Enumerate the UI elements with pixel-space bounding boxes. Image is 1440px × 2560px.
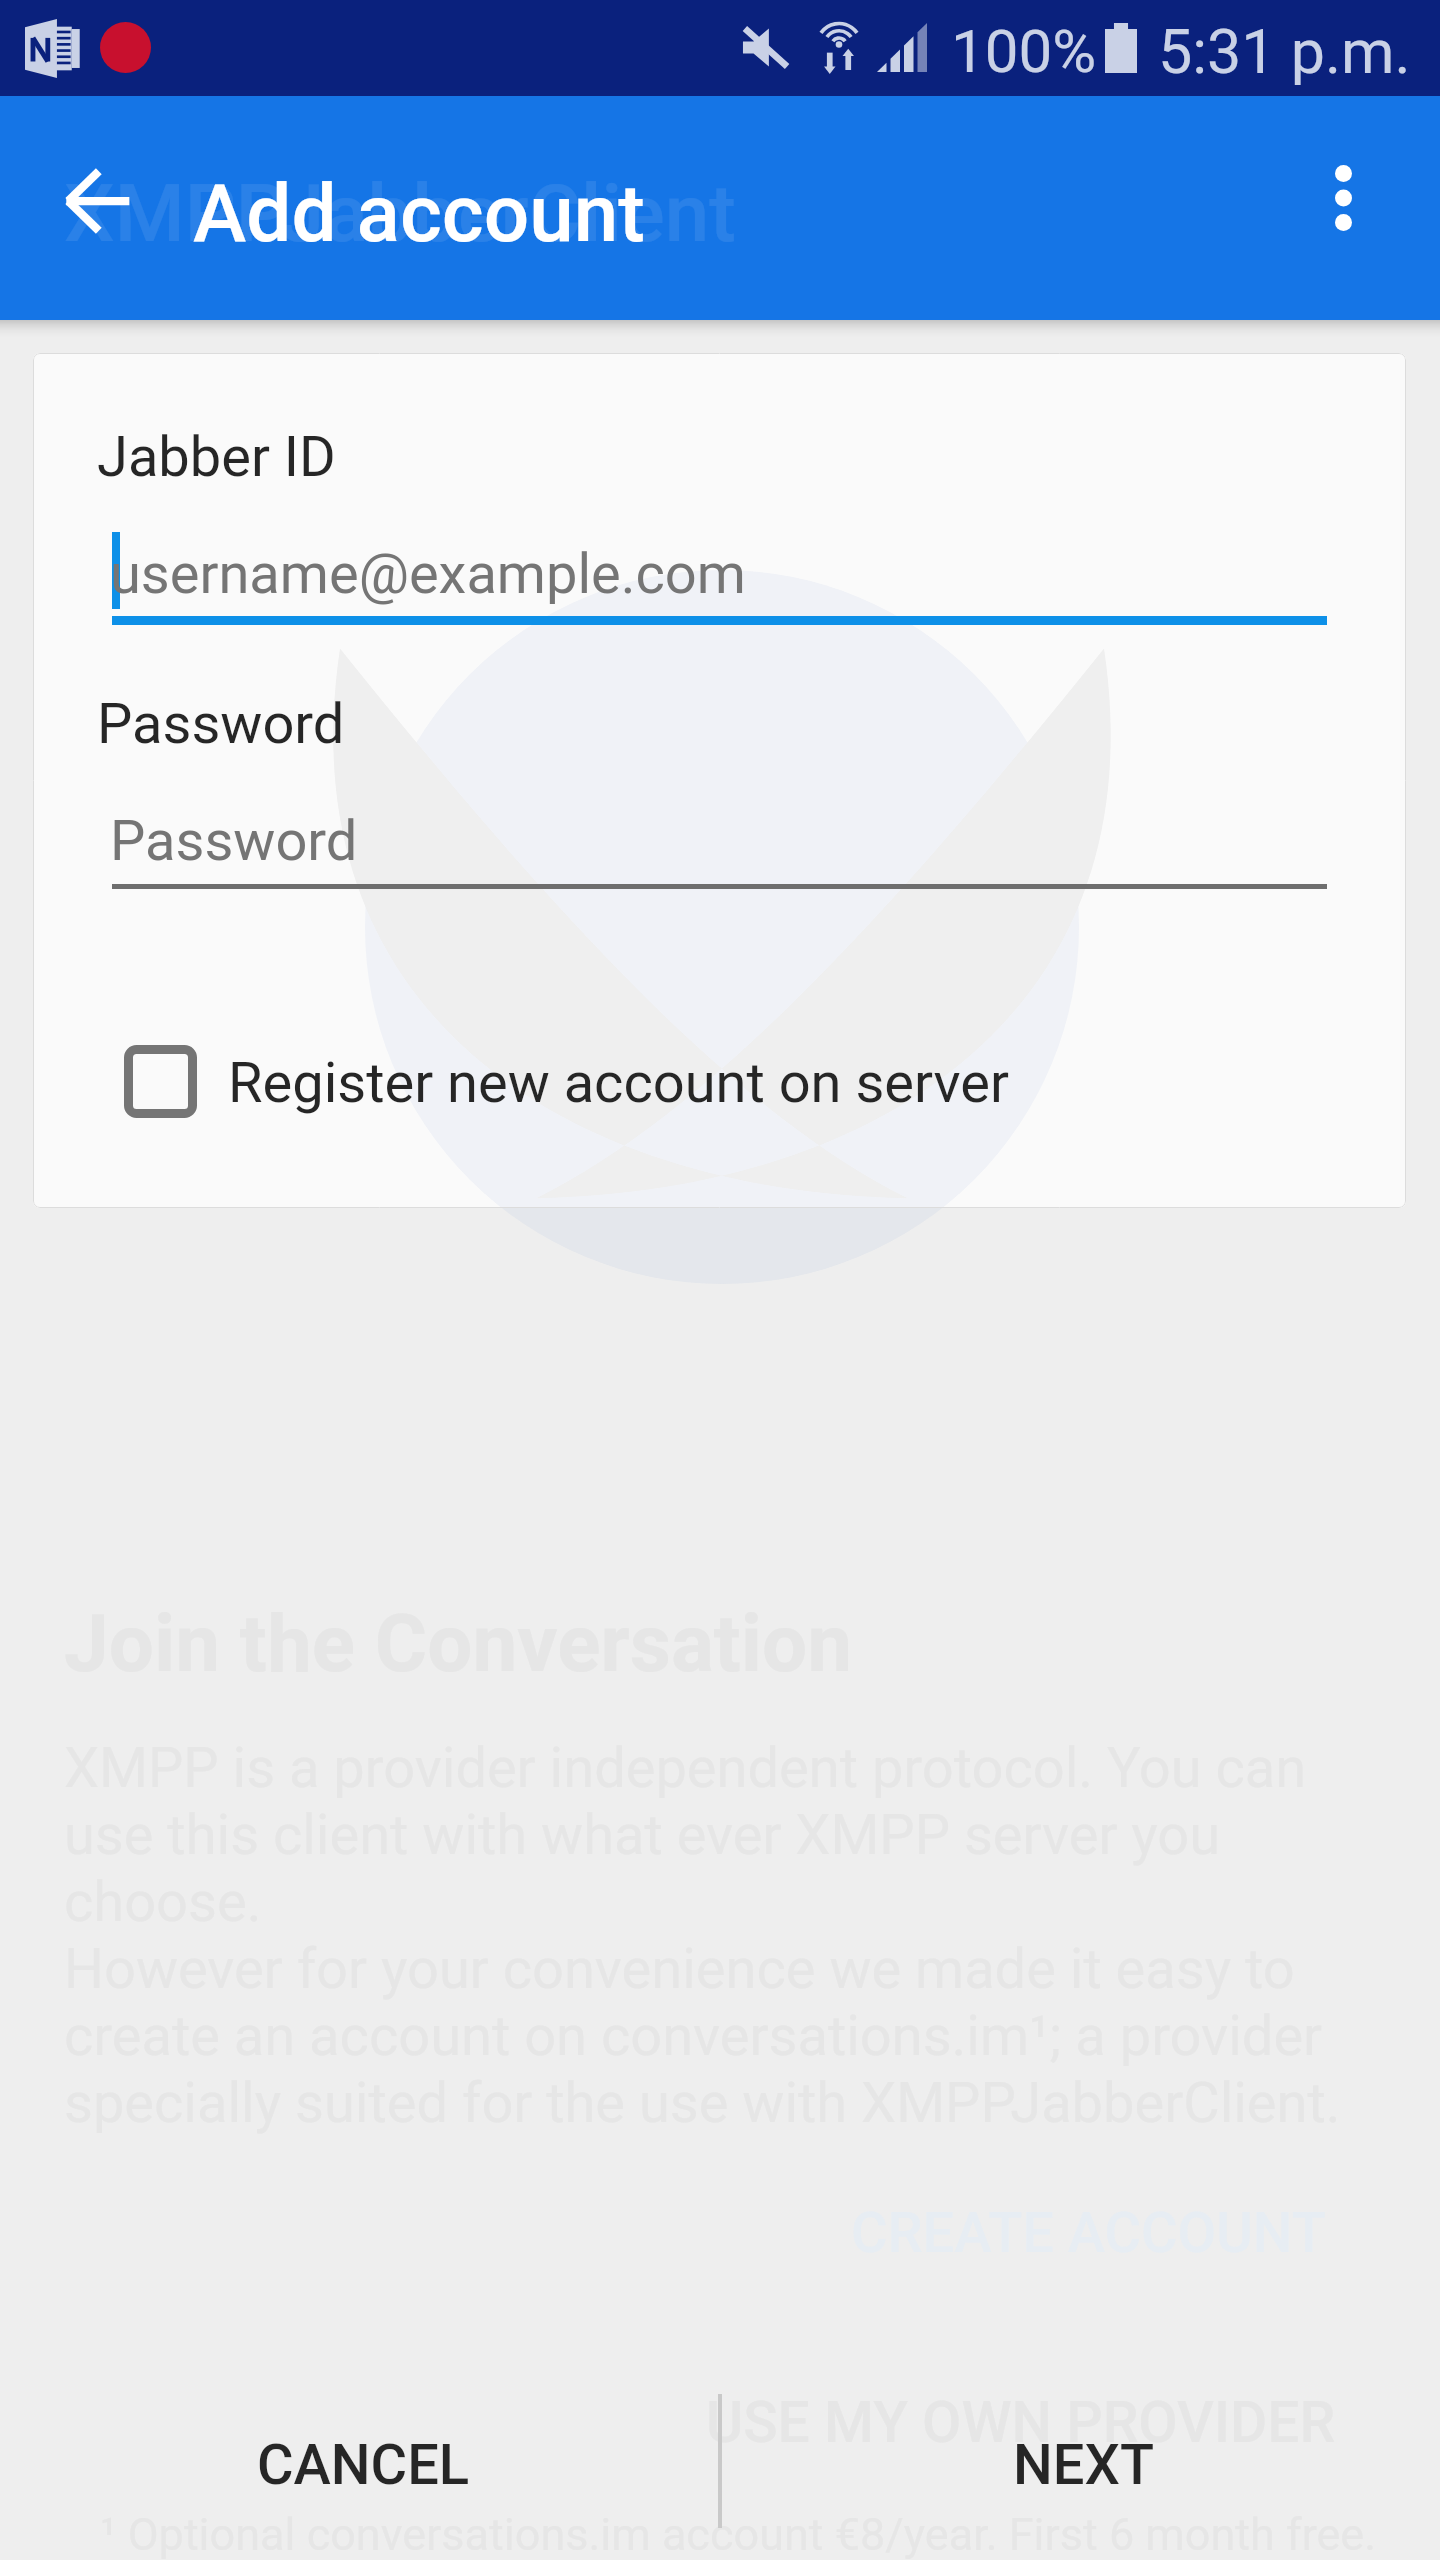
staticText: Join the Conversation [64,1597,853,1691]
button[interactable]: More options [1292,147,1394,249]
staticText: Jabber ID [97,424,336,490]
staticText: NEXT [1013,2432,1154,2498]
staticText: 5:31 p.m. [1158,16,1411,87]
staticText: CANCEL [257,2432,470,2498]
button[interactable]: Register new account on server [113,1029,1113,1135]
staticText: 100% [951,16,1097,86]
staticText: username@example.com [110,541,746,607]
staticText: XMPPJabberClient [64,167,736,261]
button[interactable]: Password [112,785,1327,889]
button[interactable]: username@example.com [112,519,1327,625]
staticText: Password [97,691,345,757]
staticText: ¹ Optional conversations.im account €8/y… [100,2508,1377,2560]
staticText: Password [110,808,358,874]
staticText: Register new account on server [228,1050,1009,1116]
staticText: Add account [193,167,645,261]
button[interactable]: CANCEL [160,2383,560,2533]
button[interactable]: NEXT [882,2383,1282,2533]
button[interactable]: Navigate up [41,145,153,257]
staticText: USE MY OWN PROVIDER [706,2389,1336,2456]
